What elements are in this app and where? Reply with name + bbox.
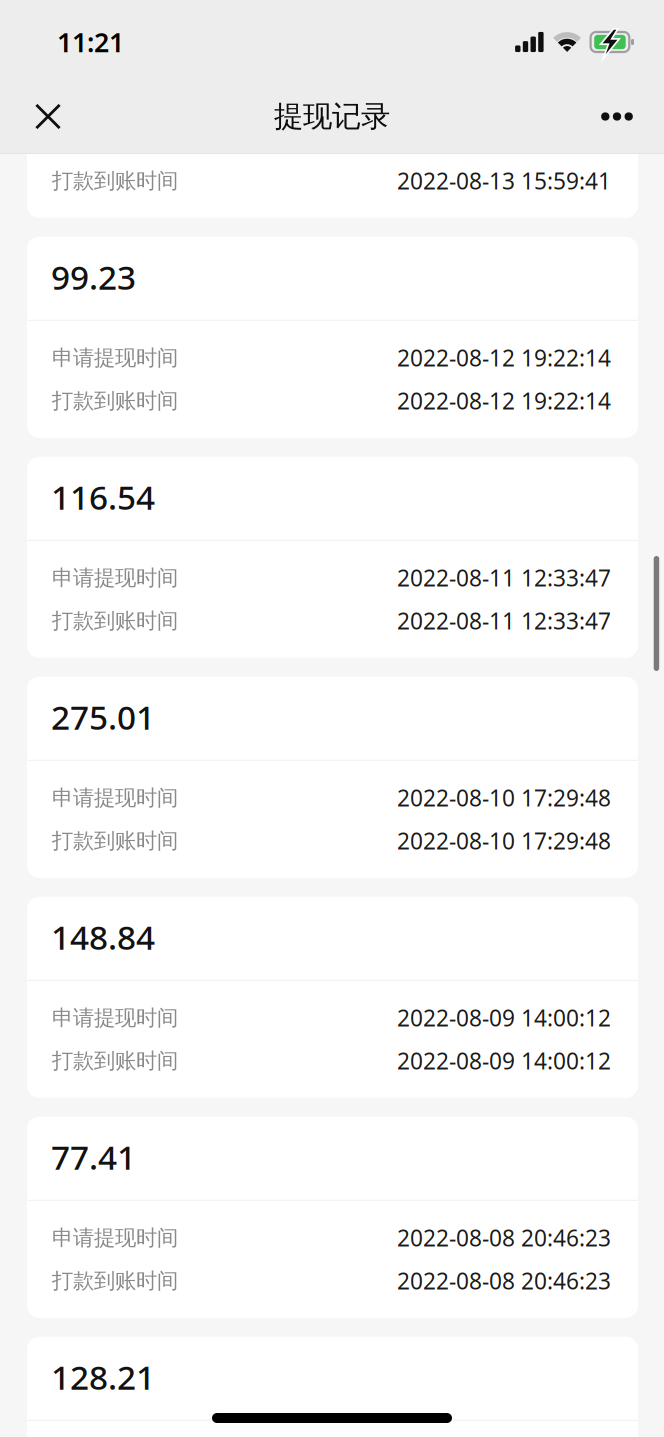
staticText: 2022-08-12 19:22:14	[397, 386, 611, 416]
button[interactable]: 1320.00	[27, 17, 638, 218]
staticText: 打款到账时间	[52, 168, 178, 194]
button[interactable]: 148.84	[27, 897, 638, 1098]
staticText: 116.54	[51, 475, 155, 519]
staticText: 提现记录	[274, 98, 390, 134]
staticText: 2022-08-09 14:00:12	[397, 1046, 611, 1076]
staticText: 2022-08-13 15:59:41	[397, 166, 611, 196]
staticText: 1320.00	[51, 35, 174, 79]
staticText: 2022-08-10 17:29:48	[397, 783, 611, 813]
staticText: 148.84	[51, 915, 155, 959]
staticText: 11:21	[57, 24, 124, 60]
button[interactable]: 128.21	[27, 1337, 638, 1437]
staticText: 申请提现时间	[52, 1225, 178, 1251]
button[interactable]: 116.54	[27, 457, 638, 658]
staticText: 打款到账时间	[52, 388, 178, 414]
button[interactable]: 77.41	[27, 1117, 638, 1318]
staticText: 打款到账时间	[52, 828, 178, 854]
staticText: 2022-08-09 14:00:12	[397, 1003, 611, 1033]
staticText: 2022-08-11 12:33:47	[397, 606, 611, 636]
staticText: 申请提现时间	[52, 125, 178, 151]
staticText: 275.01	[51, 695, 155, 739]
staticText: 99.23	[51, 255, 136, 299]
staticText: 77.41	[51, 1135, 136, 1179]
staticText: 2022-08-12 19:22:14	[397, 343, 611, 373]
staticText: 2022-08-08 20:46:23	[397, 1266, 611, 1296]
staticText: 128.21	[51, 1355, 155, 1399]
staticText: 申请提现时间	[52, 565, 178, 591]
staticText: 打款到账时间	[52, 1048, 178, 1074]
staticText: 2022-08-11 12:33:47	[397, 563, 611, 593]
button[interactable]: 99.23	[27, 237, 638, 438]
button[interactable]: 更多	[586, 80, 648, 153]
button[interactable]: 275.01	[27, 677, 638, 878]
staticText: 申请提现时间	[52, 345, 178, 371]
button[interactable]: 关闭	[17, 80, 79, 153]
staticText: 2022-08-08 20:46:23	[397, 1223, 611, 1253]
staticText: 2022-08-10 17:29:48	[397, 826, 611, 856]
staticText: 申请提现时间	[52, 785, 178, 811]
staticText: 申请提现时间	[52, 1005, 178, 1031]
staticText: 打款到账时间	[52, 1268, 178, 1294]
staticText: 打款到账时间	[52, 608, 178, 634]
